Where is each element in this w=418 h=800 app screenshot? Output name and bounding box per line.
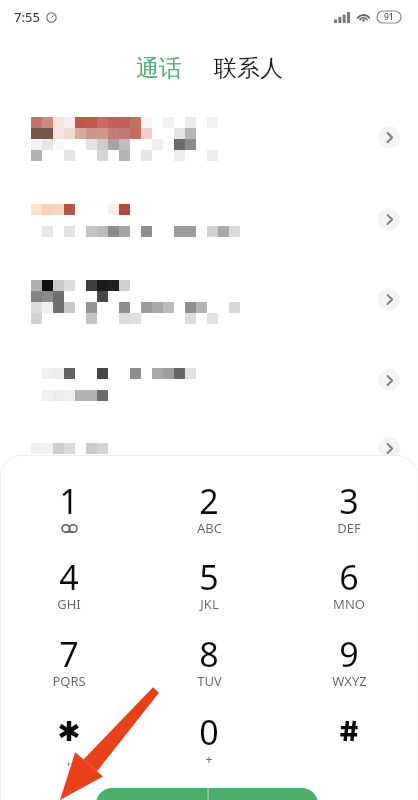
button[interactable]: Call details [0,194,418,276]
button[interactable]: 3 [304,478,394,550]
button[interactable]: Call details [378,369,400,391]
button[interactable]: Call details [0,270,418,352]
staticText: 0 [199,709,219,753]
staticText: WXYZ [332,672,367,690]
staticText: ABC [197,519,222,537]
button[interactable]: 0 [164,709,254,781]
button[interactable]: 5 [164,554,254,626]
button[interactable]: 2 [164,478,254,550]
button[interactable]: Call details [0,433,418,515]
staticText: 6 [339,554,359,598]
button[interactable]: 1 [24,478,114,550]
staticText: 3 [339,478,359,522]
staticText: 联系人 [214,54,283,83]
staticText: , [67,750,71,768]
staticText: 2 [199,478,219,522]
staticText: MNO [333,595,365,613]
button[interactable]: 8 [164,631,254,703]
staticText: 通话 [136,54,182,83]
button[interactable]: Call details [378,126,400,148]
staticText: 8 [199,631,219,675]
staticText: DEF [337,519,361,537]
button[interactable]: Call details [378,208,400,230]
button[interactable] [304,709,394,781]
staticText: TUV [197,672,222,690]
button[interactable]: , [24,709,114,781]
staticText: 7:55 [14,8,40,26]
button[interactable]: 4 [24,554,114,626]
staticText: GHI [57,595,81,613]
staticText: 91 [384,11,394,23]
button[interactable]: 9 [304,631,394,703]
button[interactable]: Call details [0,107,418,189]
button[interactable]: 6 [304,554,394,626]
button[interactable]: 联系人 [202,50,295,87]
staticText: 9 [339,631,359,675]
button[interactable]: Call details [378,288,400,310]
button[interactable]: Call [96,788,318,800]
button[interactable]: 通话 [124,50,194,87]
staticText: JKL [200,595,219,613]
staticText: 1 [59,478,79,522]
button[interactable]: Call details [0,358,418,440]
staticText: + [205,750,213,768]
staticText: 4 [59,554,79,598]
button[interactable]: 7 [24,631,114,703]
staticText: 7 [59,631,79,675]
staticText: PQRS [52,672,86,690]
button[interactable]: Call details [378,437,400,459]
staticText: 5 [199,554,219,598]
